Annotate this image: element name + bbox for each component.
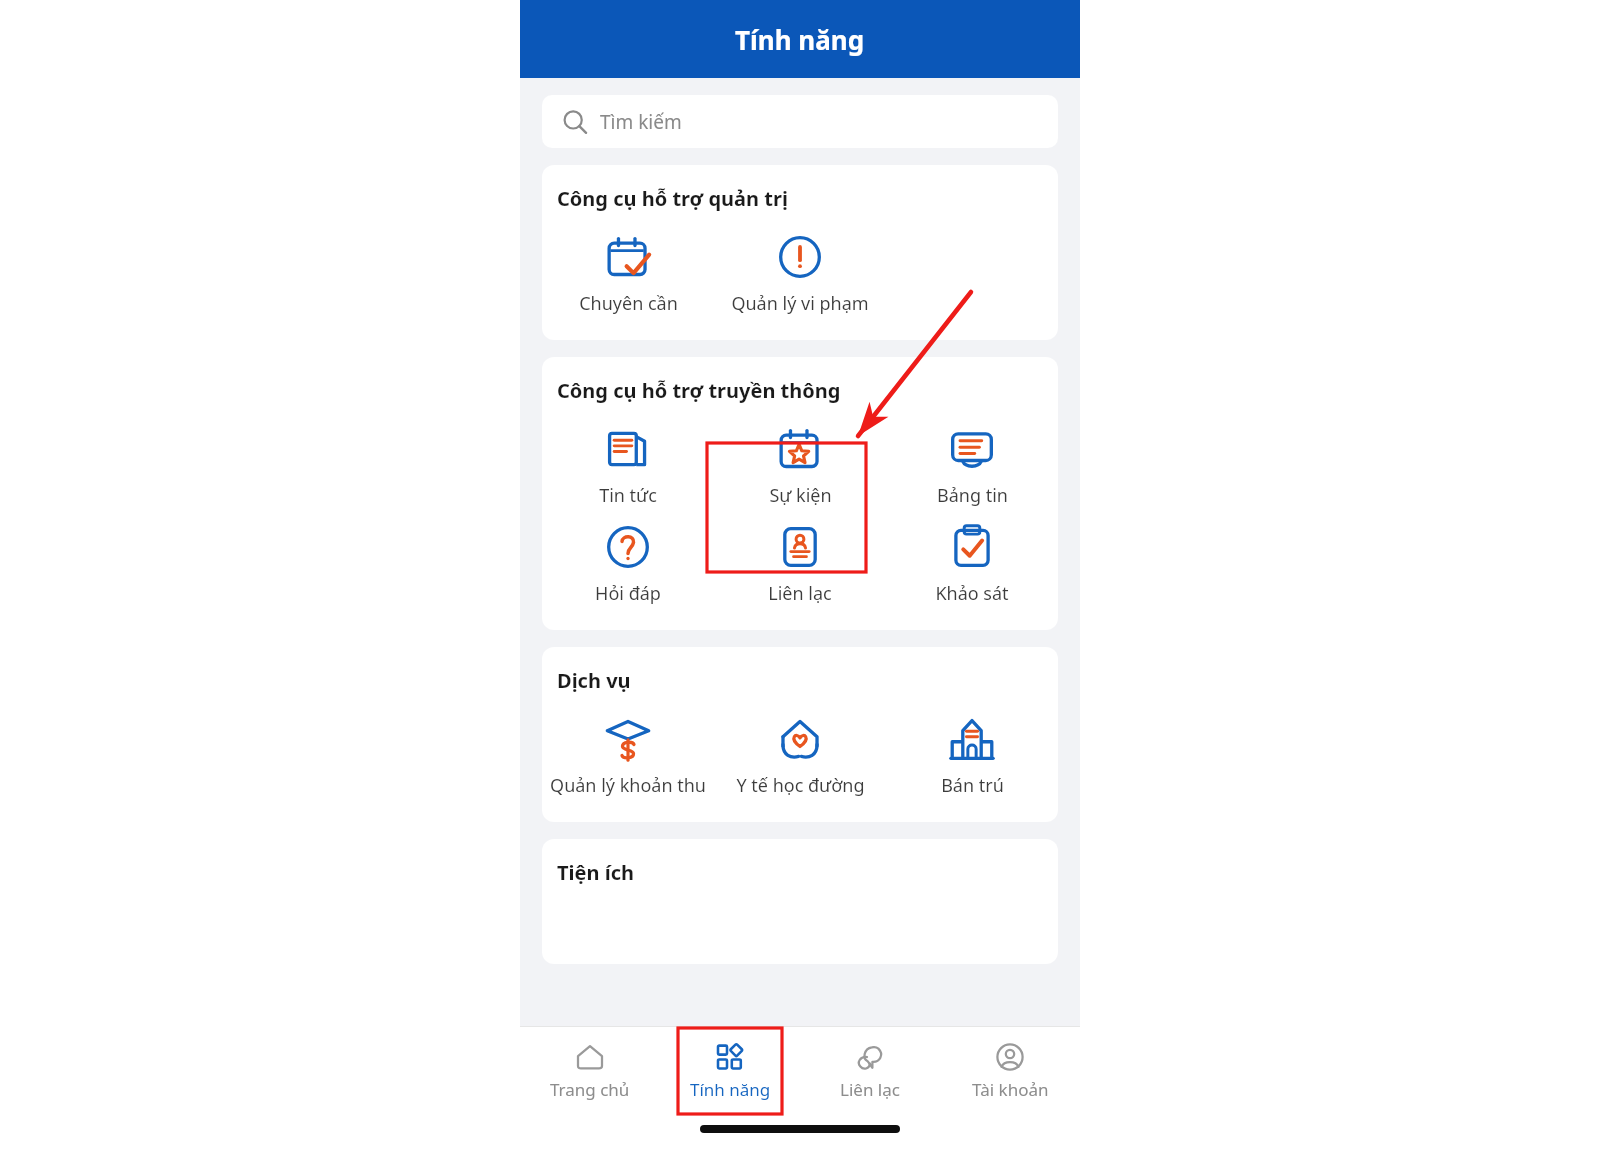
staticText: Quản lý khoản thu [550, 773, 706, 798]
staticText: Tài khoản [972, 1078, 1049, 1101]
staticText: Chuyên cần [579, 291, 678, 316]
button[interactable]: Quản lý vi phạm [714, 230, 886, 320]
staticText: Trang chủ [550, 1078, 630, 1101]
button[interactable]: Trang chủ [520, 1036, 660, 1107]
staticText: Y tế học đường [736, 773, 865, 798]
button[interactable]: Sự kiện [714, 422, 886, 512]
staticText: Bảng tin [937, 483, 1008, 508]
button[interactable]: Tin tức [542, 422, 714, 512]
staticText: Tính năng [735, 22, 865, 57]
staticText: Công cụ hỗ trợ quản trị [557, 185, 788, 212]
staticText: Tin tức [599, 483, 657, 508]
button[interactable]: Y tế học đường [714, 712, 886, 802]
button[interactable]: Liên lạc [800, 1036, 940, 1107]
staticText: Tính năng [690, 1078, 771, 1101]
staticText: Liên lạc [768, 581, 832, 606]
button[interactable]: Bảng tin [886, 422, 1058, 512]
button[interactable]: Tính năng [660, 1036, 800, 1107]
staticText: Bán trú [941, 773, 1004, 798]
staticText: Quản lý vi phạm [731, 291, 869, 316]
staticText: Khảo sát [935, 581, 1009, 606]
button[interactable]: Chuyên cần [542, 230, 714, 320]
staticText: Công cụ hỗ trợ truyền thông [557, 377, 841, 404]
staticText: Dịch vụ [557, 667, 631, 694]
button[interactable]: Bán trú [886, 712, 1058, 802]
button[interactable]: Liên lạc [714, 520, 886, 610]
button[interactable]: Quản lý khoản thu [542, 712, 714, 802]
staticText: Liên lạc [840, 1078, 900, 1101]
staticText: Hỏi đáp [595, 581, 661, 606]
button[interactable]: Hỏi đáp [542, 520, 714, 610]
button[interactable]: Khảo sát [886, 520, 1058, 610]
button[interactable]: Tìm kiếm [542, 95, 1058, 148]
staticText: Sự kiện [769, 483, 832, 508]
staticText: Tiện ích [557, 859, 634, 886]
staticText: Tìm kiếm [600, 109, 682, 135]
button[interactable]: Tài khoản [940, 1036, 1080, 1107]
